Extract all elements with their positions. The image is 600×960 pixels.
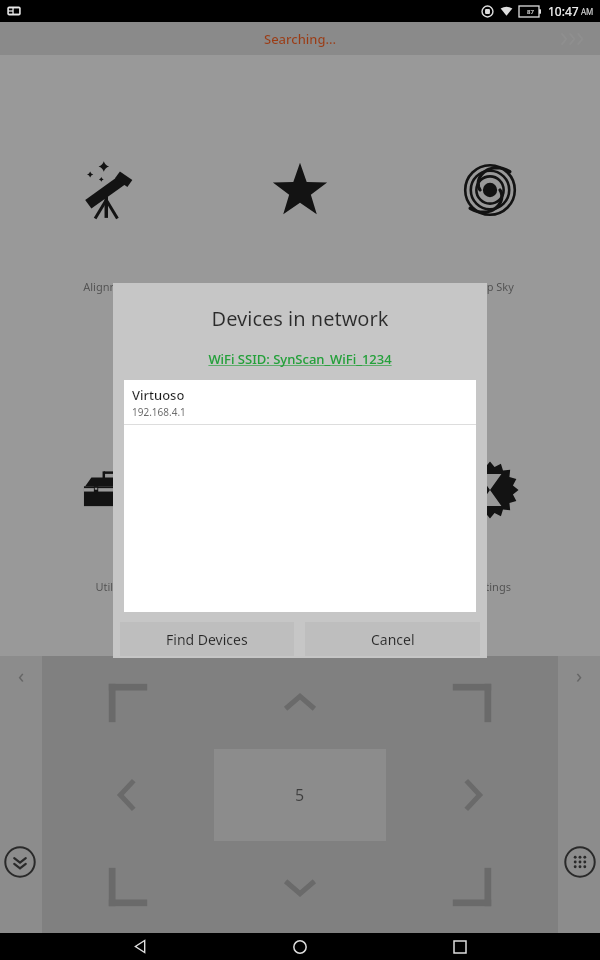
button[interactable]: Direction [386,656,558,749]
button[interactable]: Home [280,933,320,960]
staticText: 87 [527,8,534,16]
staticText: Objects [281,279,320,294]
staticText: Settings [469,579,511,594]
staticText: Find Devices [166,630,248,649]
button[interactable]: Alignment [30,155,190,298]
staticText: 10:47 [548,3,579,19]
button[interactable]: WiFi SSID: SynScan_WiFi_1234 [113,350,487,368]
staticText: Utility [95,579,126,594]
staticText: Devices in network [113,305,487,332]
button[interactable]: Virtuoso [124,380,476,424]
staticText: 192.168.4.1 [132,405,186,419]
button[interactable]: ‹ [18,662,25,689]
staticText: Deep Sky [466,279,514,294]
staticText: Virtuoso [132,386,185,404]
staticText: Alignment [83,279,137,294]
button[interactable]: Apps [564,846,596,878]
button[interactable]: Utility [30,455,190,598]
button[interactable]: Direction [214,656,386,749]
button[interactable]: Find Devices [120,622,294,656]
button[interactable]: Direction [386,841,558,933]
button[interactable]: › [576,662,583,689]
button[interactable]: Direction [42,841,214,933]
button[interactable]: Recents [440,933,480,960]
button[interactable]: Objects [220,155,380,298]
button[interactable]: Collapse [4,846,36,878]
button[interactable]: Settings [410,455,570,598]
button[interactable]: Cancel [305,622,480,656]
staticText: Cancel [371,630,415,649]
button[interactable]: Back [120,933,160,960]
button[interactable]: Deep Sky [410,155,570,298]
staticText: AM [581,6,594,17]
staticText: Searching... [264,30,337,48]
staticText: 5 [295,784,305,806]
button[interactable]: Direction [42,656,214,749]
